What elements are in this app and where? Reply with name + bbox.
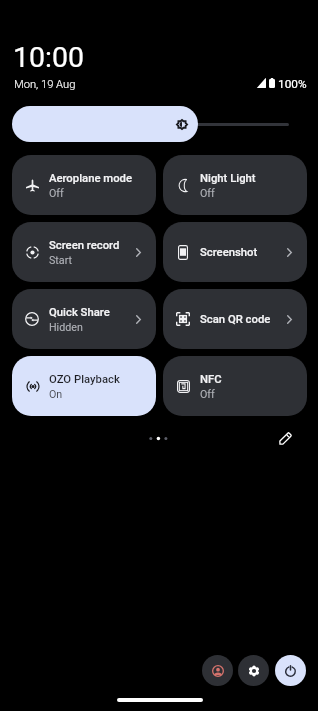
staticText: Off bbox=[49, 187, 64, 200]
button[interactable]: Edit tiles bbox=[273, 427, 297, 451]
button[interactable]: Scan QR code bbox=[163, 289, 307, 349]
staticText: Screen record bbox=[49, 239, 120, 252]
staticText: Off bbox=[200, 388, 215, 401]
button[interactable]: Quick Share bbox=[12, 289, 156, 349]
button[interactable]: Night Light bbox=[163, 155, 307, 215]
button[interactable]: User profile bbox=[202, 655, 233, 686]
staticText: Aeroplane mode bbox=[49, 172, 133, 185]
button[interactable]: Settings bbox=[238, 655, 269, 686]
staticText: Night Light bbox=[200, 172, 256, 185]
staticText: 100% bbox=[278, 77, 307, 91]
button[interactable]: Aeroplane mode bbox=[12, 155, 156, 215]
staticText: Mon, 19 Aug bbox=[14, 78, 76, 91]
button[interactable]: Brightness bbox=[12, 106, 306, 142]
staticText: OZO Playback bbox=[49, 373, 120, 386]
button[interactable]: Screen record bbox=[12, 222, 156, 282]
staticText: Scan QR code bbox=[200, 313, 271, 326]
staticText: 10:00 bbox=[13, 41, 84, 74]
button[interactable]: OZO Playback bbox=[12, 356, 156, 416]
staticText: Start bbox=[49, 254, 73, 267]
staticText: On bbox=[49, 388, 63, 401]
button[interactable]: Power bbox=[275, 655, 306, 686]
staticText: NFC bbox=[200, 373, 222, 386]
staticText: Off bbox=[200, 187, 215, 200]
staticText: Screenshot bbox=[200, 246, 258, 259]
staticText: Quick Share bbox=[49, 306, 110, 319]
staticText: Hidden bbox=[49, 321, 83, 334]
button[interactable]: Screenshot bbox=[163, 222, 307, 282]
button[interactable]: NFC bbox=[163, 356, 307, 416]
